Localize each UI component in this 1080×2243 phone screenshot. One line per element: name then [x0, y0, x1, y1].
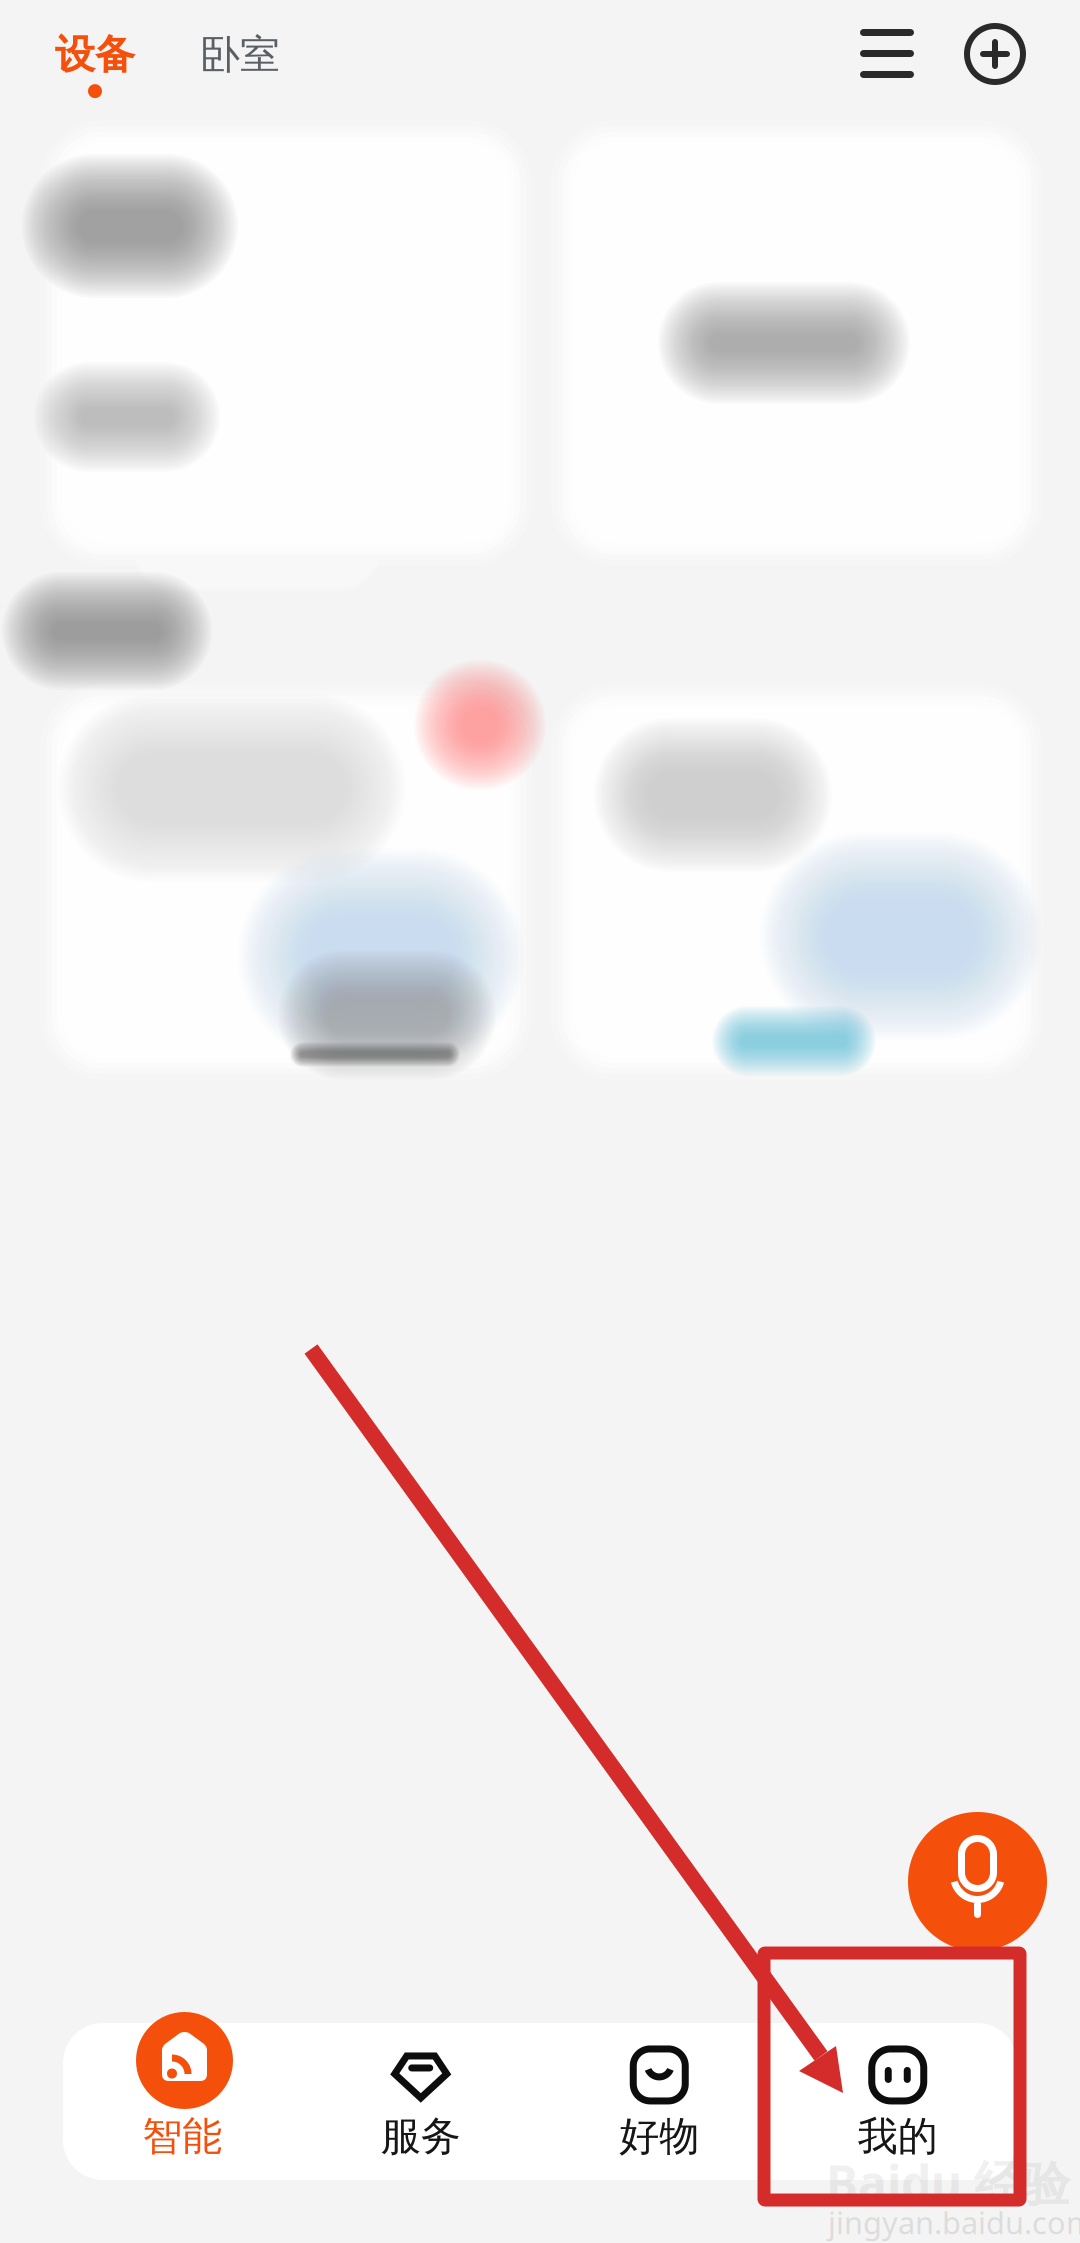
- staticText: 好物: [619, 2112, 699, 2161]
- staticText: 智能: [142, 2112, 222, 2161]
- staticText: 我的: [858, 2112, 938, 2161]
- button[interactable]: 卧室: [200, 30, 280, 79]
- staticText: Baidu 经验: [826, 2150, 1070, 2214]
- staticText: 卧室: [200, 30, 280, 79]
- button[interactable]: Menu: [860, 29, 914, 78]
- staticText: 服务: [381, 2112, 461, 2161]
- button[interactable]: 设备: [55, 30, 135, 98]
- staticText: jingyan.baidu.com: [828, 2202, 1080, 2243]
- button[interactable]: 服务: [301, 2023, 540, 2180]
- button[interactable]: Add device: [966, 25, 1024, 83]
- button[interactable]: 好物: [540, 2023, 778, 2180]
- button[interactable]: 智能: [63, 2023, 301, 2180]
- button[interactable]: Voice assistant: [908, 1812, 1047, 1951]
- button[interactable]: 智能: [136, 2012, 233, 2109]
- staticText: 设备: [55, 30, 135, 79]
- button[interactable]: 我的: [778, 2023, 1017, 2180]
